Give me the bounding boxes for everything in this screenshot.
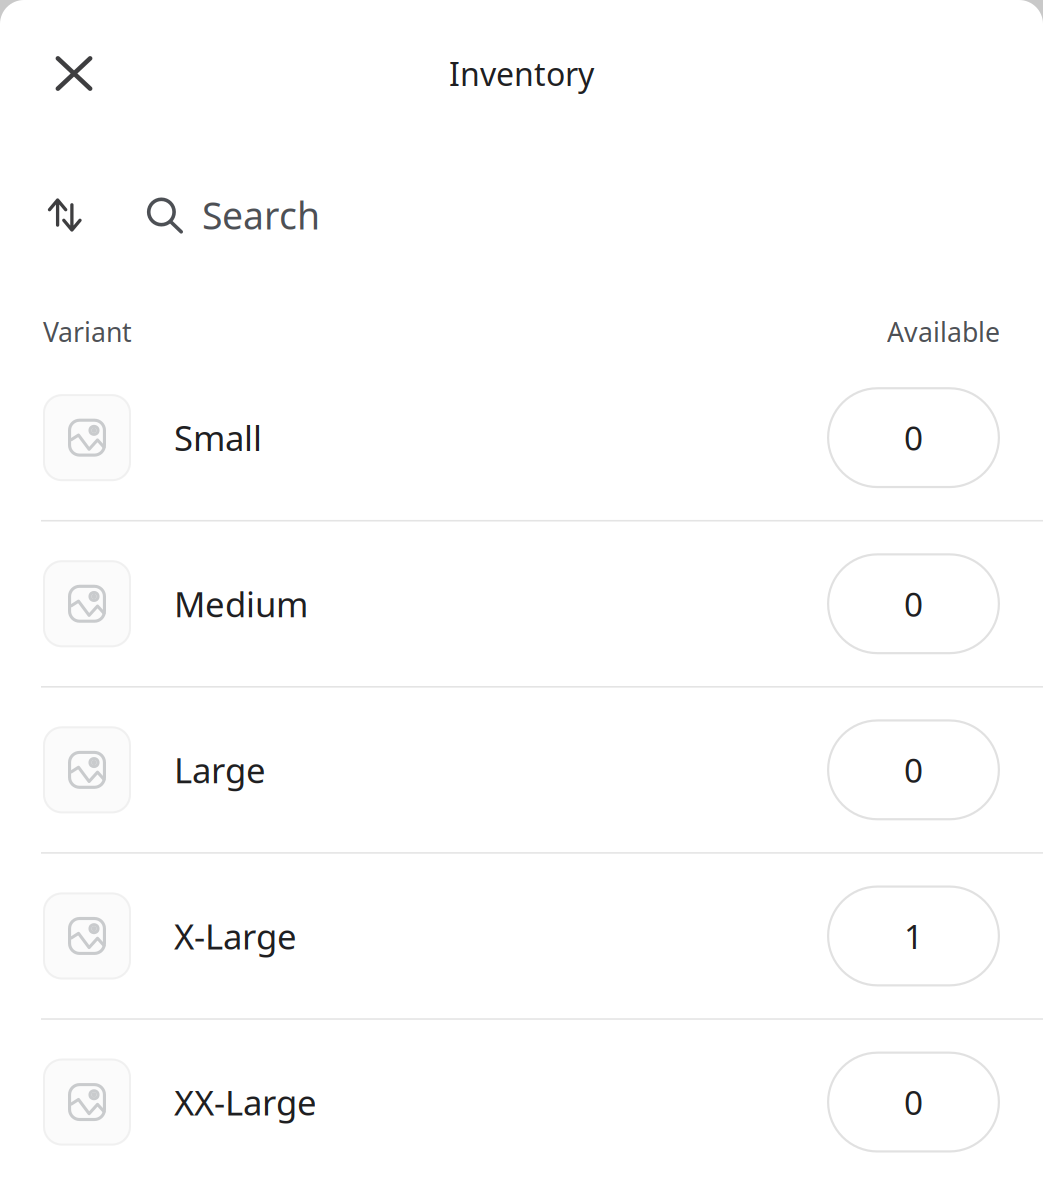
staticText: 0 (904, 748, 923, 792)
button[interactable]: Sort (33, 181, 97, 249)
button[interactable]: Large (0, 688, 1043, 852)
button[interactable]: Search (97, 181, 570, 249)
staticText: Small (174, 415, 262, 461)
button[interactable]: Small (0, 355, 1043, 520)
staticText: Medium (174, 581, 308, 627)
staticText: Variant (43, 314, 132, 349)
staticText: 0 (904, 582, 923, 626)
staticText: 1 (904, 914, 923, 958)
staticText: Large (174, 747, 266, 793)
button[interactable]: XX-Large (0, 1020, 1043, 1184)
staticText: Search (202, 190, 320, 240)
staticText: Available (887, 314, 1000, 349)
button[interactable]: X-Large (0, 854, 1043, 1018)
button[interactable]: Close (43, 42, 105, 104)
staticText: X-Large (174, 913, 297, 959)
staticText: 0 (904, 1080, 923, 1124)
staticText: XX-Large (174, 1079, 317, 1125)
button[interactable]: Medium (0, 521, 1043, 686)
staticText: Inventory (449, 52, 594, 95)
staticText: 0 (904, 415, 923, 460)
